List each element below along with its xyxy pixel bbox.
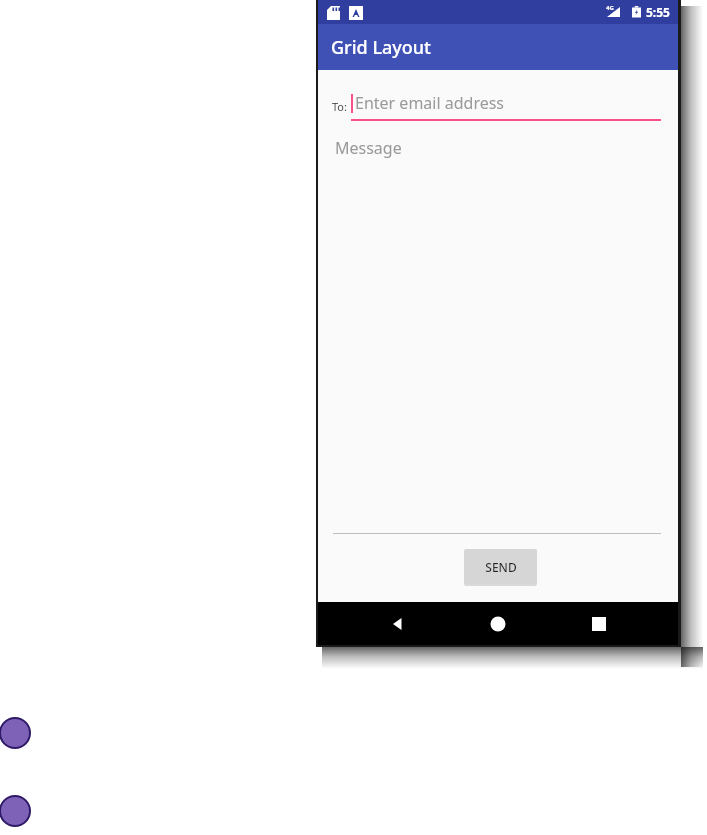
button[interactable]: Message [318,137,678,533]
button[interactable]: Recent apps [577,602,621,645]
button[interactable]: To: [332,92,661,121]
button[interactable]: Back [375,602,419,645]
staticText: 5:55 [646,4,670,20]
staticText: 4G [606,4,614,12]
button[interactable]: Home [476,602,520,645]
staticText: Grid Layout [331,35,431,60]
staticText: SEND [485,559,517,575]
staticText: To: [332,99,347,114]
staticText: Enter email address [355,92,505,114]
button[interactable]: SEND [464,549,537,584]
staticText: Message [335,137,402,159]
